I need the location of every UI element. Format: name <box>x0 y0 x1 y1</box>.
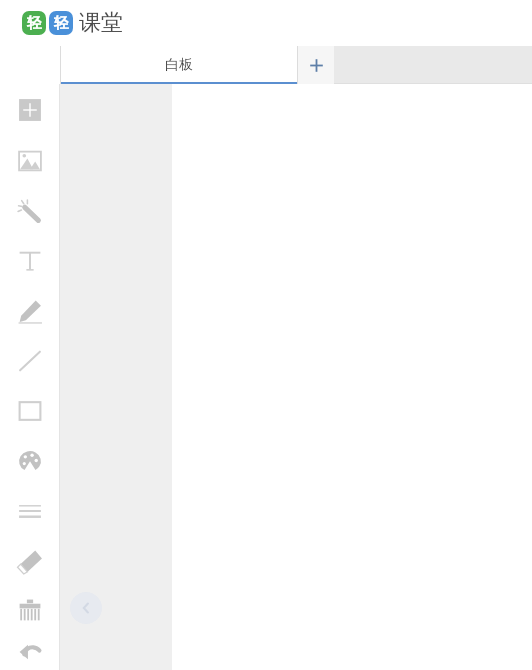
button[interactable]: Undo <box>0 636 60 670</box>
staticText: 轻 <box>54 14 69 33</box>
button[interactable]: Clear <box>0 586 60 636</box>
staticText: 课堂 <box>79 9 123 37</box>
button[interactable]: Palette <box>0 436 60 486</box>
button[interactable]: Line width <box>0 486 60 536</box>
button[interactable]: Magic wand <box>0 186 60 236</box>
button[interactable]: Select <box>0 84 60 136</box>
button[interactable]: Pencil <box>0 286 60 336</box>
button[interactable]: Eraser <box>0 536 60 586</box>
button[interactable]: Rectangle <box>0 386 60 436</box>
button[interactable]: Text <box>0 236 60 286</box>
staticText: 白板 <box>165 56 193 74</box>
staticText: 轻 <box>27 14 42 33</box>
button[interactable]: New tab <box>298 46 334 84</box>
button[interactable]: Collapse panel <box>70 592 102 624</box>
button[interactable]: Line <box>0 336 60 386</box>
button[interactable]: 白板 <box>60 46 298 84</box>
button[interactable]: Image <box>0 136 60 186</box>
